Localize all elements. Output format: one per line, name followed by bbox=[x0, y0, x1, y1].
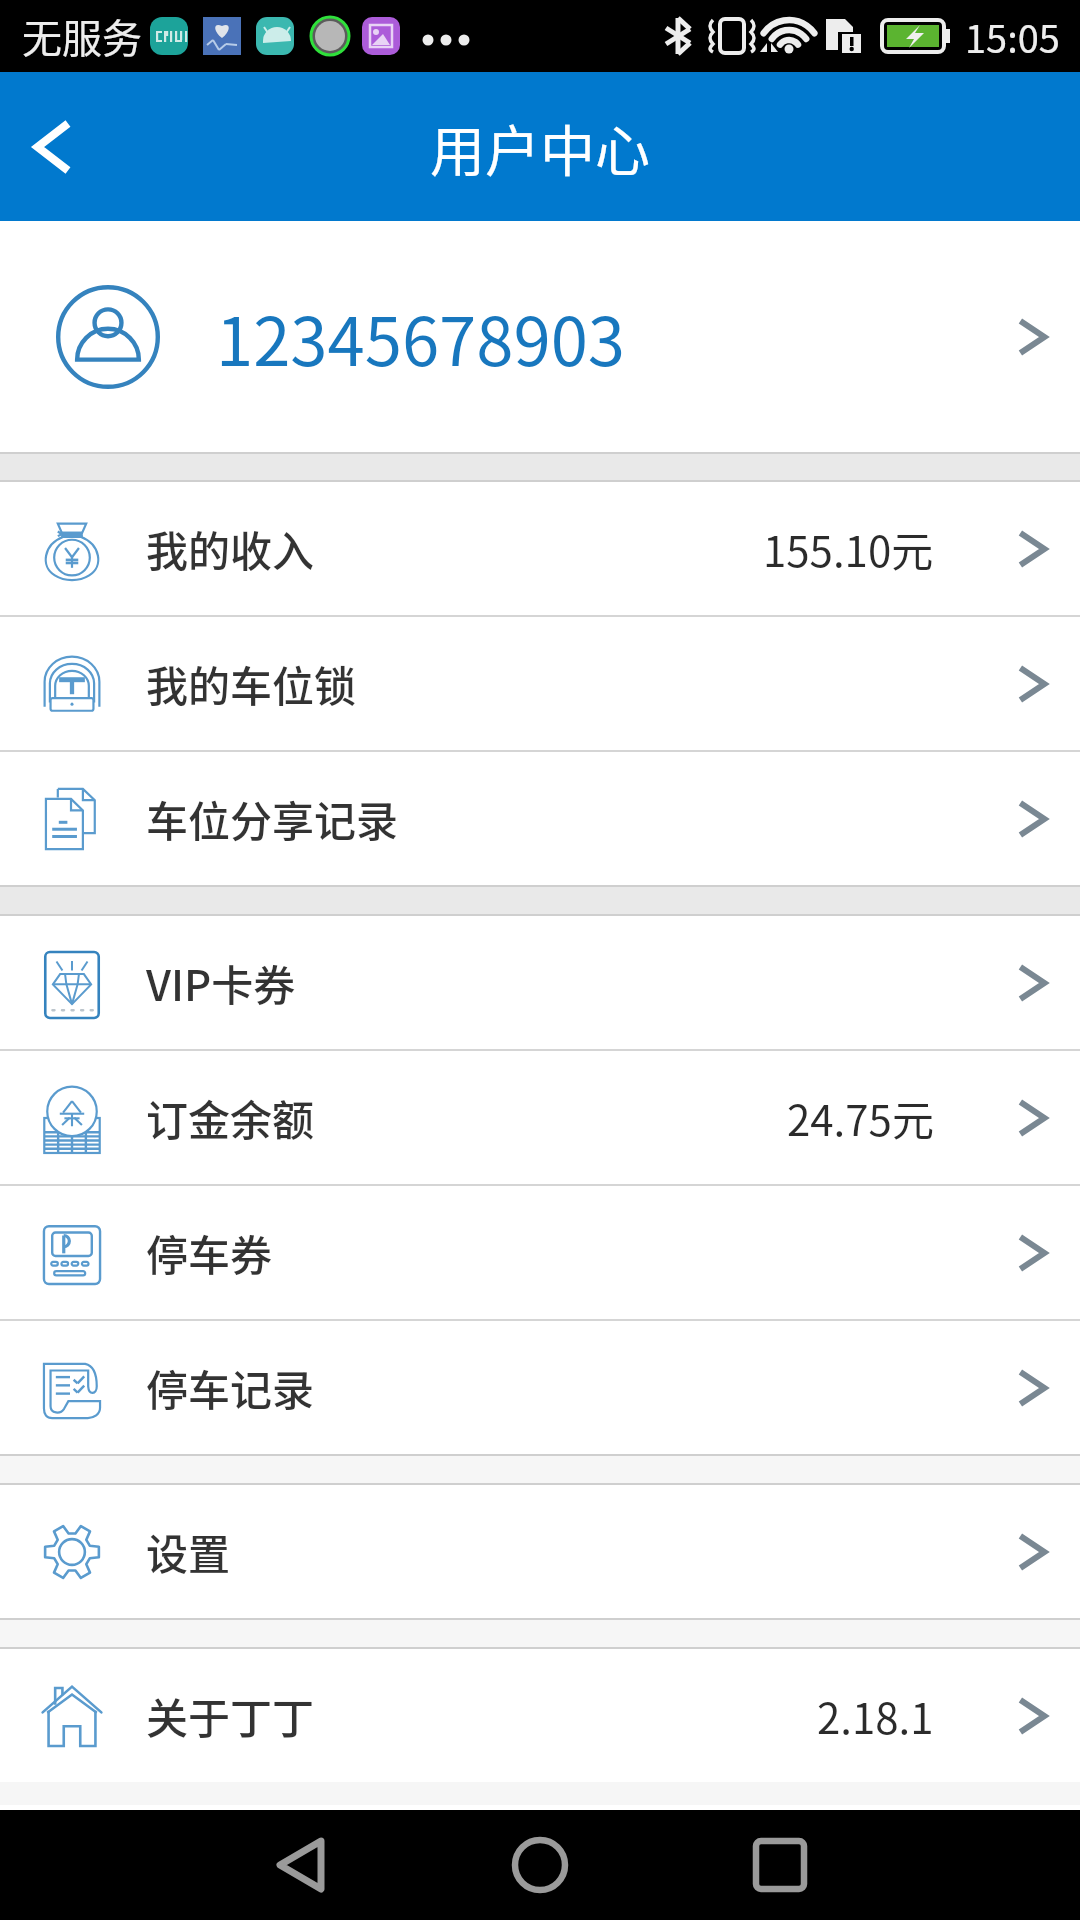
button[interactable]: 我的车位锁 bbox=[0, 617, 1080, 750]
button[interactable]: 12345678903 bbox=[0, 221, 1080, 452]
button[interactable]: Back bbox=[0, 97, 100, 197]
staticText: 12345678903 bbox=[216, 288, 626, 385]
button[interactable]: 我的收入 bbox=[0, 482, 1080, 615]
staticText: 关于丁丁 bbox=[146, 1685, 315, 1746]
staticText: VIP卡券 bbox=[146, 952, 296, 1013]
staticText: 车位分享记录 bbox=[146, 788, 399, 849]
button[interactable]: 停车记录 bbox=[0, 1321, 1080, 1454]
staticText: 我的收入 bbox=[146, 518, 315, 579]
staticText: 订金余额 bbox=[146, 1087, 315, 1148]
staticText: 设置 bbox=[146, 1521, 231, 1582]
staticText: 停车券 bbox=[146, 1222, 273, 1283]
button[interactable]: 关于丁丁 bbox=[0, 1649, 1080, 1782]
staticText: 2.18.1 bbox=[817, 1685, 934, 1746]
staticText: 我的车位锁 bbox=[146, 653, 357, 714]
button[interactable]: Recents bbox=[735, 1820, 825, 1910]
button[interactable]: VIP卡券 bbox=[0, 916, 1080, 1049]
staticText: 15:05 bbox=[965, 9, 1060, 64]
button[interactable]: 停车券 bbox=[0, 1186, 1080, 1319]
button[interactable]: 设置 bbox=[0, 1485, 1080, 1618]
button[interactable]: 车位分享记录 bbox=[0, 752, 1080, 885]
staticText: 24.75元 bbox=[787, 1087, 934, 1148]
staticText: 用户中心 bbox=[430, 107, 651, 187]
button[interactable]: Home bbox=[495, 1820, 585, 1910]
staticText: 无服务 bbox=[22, 7, 142, 65]
button[interactable]: Back bbox=[255, 1820, 345, 1910]
staticText: 停车记录 bbox=[146, 1357, 315, 1418]
staticText: 155.10元 bbox=[763, 518, 934, 579]
button[interactable]: 订金余额 bbox=[0, 1051, 1080, 1184]
